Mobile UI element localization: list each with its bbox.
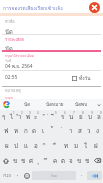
staticText: 2 xyxy=(21,111,23,115)
button[interactable]: ร xyxy=(58,110,67,124)
button[interactable]: ื xyxy=(51,138,61,153)
staticText: ๆ xyxy=(2,112,6,122)
button[interactable]: More suggestions xyxy=(95,99,103,110)
staticText: แ xyxy=(24,141,28,151)
button[interactable]: จ xyxy=(67,153,75,168)
button[interactable]: ส xyxy=(75,124,84,138)
button[interactable]: ศ xyxy=(27,153,35,168)
staticText: นัด xyxy=(5,44,13,53)
button[interactable]: Backspace xyxy=(91,153,103,168)
button[interactable]: Close xyxy=(89,2,100,13)
button[interactable]: ไ xyxy=(8,110,16,124)
staticText: , xyxy=(17,171,19,178)
button[interactable]: Numbers xyxy=(0,168,14,183)
staticText: กรุณาใส่รายละเอียด xyxy=(5,53,34,58)
button[interactable]: ช xyxy=(83,153,91,168)
button[interactable]: ง xyxy=(93,124,102,138)
staticText: นัด xyxy=(24,101,31,108)
staticText: ำ xyxy=(18,112,22,122)
button[interactable]: ข xyxy=(12,153,19,168)
button[interactable]: เ xyxy=(39,124,48,138)
button[interactable]: ย xyxy=(76,110,85,124)
button[interactable]: ด xyxy=(30,124,39,138)
button[interactable]: นัด xyxy=(13,99,41,110)
staticText: กรอก xyxy=(5,95,13,100)
button[interactable]: แ xyxy=(21,138,31,153)
staticText: นัดพบ xyxy=(75,101,88,108)
button[interactable]: บ xyxy=(85,110,94,124)
button[interactable]: ุ xyxy=(35,153,43,168)
button[interactable]: ึ xyxy=(43,153,51,168)
button[interactable]: ฝ xyxy=(91,138,101,153)
button[interactable]: ำ xyxy=(16,110,24,124)
staticText: ใ xyxy=(84,141,88,151)
button[interactable]: ค xyxy=(51,153,59,168)
staticText: การจองรถเสียงเรียกเข้าแจ้ง xyxy=(3,4,63,12)
staticText: ฟ xyxy=(4,126,9,136)
staticText: ด xyxy=(32,126,37,136)
staticText: ห xyxy=(14,126,19,136)
staticText: ม xyxy=(74,141,79,151)
staticText: 6 xyxy=(64,111,66,115)
staticText: รายละเอียด xyxy=(5,37,25,43)
button[interactable]: พ xyxy=(24,110,32,124)
staticText: ล xyxy=(97,112,101,122)
button[interactable]: Emoji xyxy=(22,168,31,183)
button[interactable]: Space xyxy=(32,171,76,180)
button[interactable]: Comma xyxy=(14,168,22,183)
staticText: 04 พ.ย. 2564 xyxy=(5,62,33,70)
button[interactable]: ช xyxy=(19,153,27,168)
button[interactable]: นัดพบ xyxy=(68,99,95,110)
button[interactable]: น xyxy=(67,110,76,124)
button[interactable]: ๆ xyxy=(0,110,8,124)
staticText: ร xyxy=(61,112,65,122)
button[interactable]: นัดหมาย xyxy=(41,99,68,110)
button[interactable]: ข xyxy=(75,153,83,168)
button[interactable]: ้ xyxy=(48,124,57,138)
button[interactable]: Google xyxy=(0,99,13,110)
staticText: หมายเหตุ xyxy=(5,88,21,94)
button[interactable]: ิ xyxy=(41,138,51,153)
button[interactable]: ี xyxy=(49,110,58,124)
button[interactable]: ท xyxy=(61,138,71,153)
button[interactable]: ่ xyxy=(57,124,66,138)
button[interactable]: ผ xyxy=(2,138,11,153)
button[interactable]: Shift xyxy=(0,153,12,168)
button[interactable]: ป xyxy=(11,138,21,153)
staticText: 4 xyxy=(37,111,39,115)
button[interactable]: ทั้งวัน xyxy=(72,74,91,82)
staticText: ฝ xyxy=(94,141,98,151)
staticText: ย xyxy=(79,112,83,122)
staticText: พ xyxy=(26,112,31,122)
button[interactable]: Period xyxy=(77,168,86,183)
staticText: ช xyxy=(85,156,90,166)
button[interactable]: ม xyxy=(71,138,81,153)
staticText: ค xyxy=(53,156,58,166)
button[interactable]: อ xyxy=(31,138,41,153)
button[interactable]: ต xyxy=(59,153,67,168)
button[interactable]: า xyxy=(66,124,75,138)
staticText: ก xyxy=(24,126,28,136)
button[interactable]: ก xyxy=(21,124,30,138)
staticText: ทั้งวัน xyxy=(79,74,91,82)
button[interactable]: ใ xyxy=(81,138,91,153)
staticText: 8 xyxy=(82,111,84,115)
staticText: 7 xyxy=(73,111,75,115)
button[interactable]: ว xyxy=(84,124,93,138)
staticText: ง xyxy=(96,126,100,136)
staticText: 9 xyxy=(91,111,93,115)
staticText: หัวข้อ xyxy=(5,19,15,25)
staticText: 5 xyxy=(55,111,57,115)
button[interactable]: ฟ xyxy=(1,124,11,138)
button[interactable]: ล xyxy=(94,110,103,124)
button[interactable]: ั xyxy=(40,110,49,124)
staticText: ไทย xyxy=(51,173,57,178)
staticText: ป xyxy=(14,141,18,151)
staticText: ว xyxy=(87,126,91,136)
button[interactable]: Enter xyxy=(87,171,102,180)
button[interactable]: ห xyxy=(11,124,21,138)
staticText: ผ xyxy=(5,141,9,151)
button[interactable]: ะ xyxy=(32,110,40,124)
staticText: บ xyxy=(88,112,92,122)
staticText: 0 xyxy=(100,111,102,115)
